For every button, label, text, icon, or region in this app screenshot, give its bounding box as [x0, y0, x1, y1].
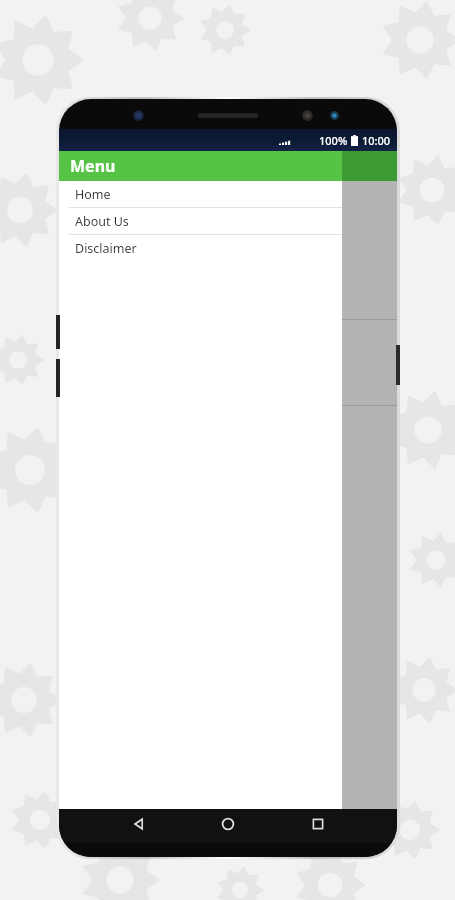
- button[interactable]: Disclaimer: [59, 235, 342, 261]
- staticText: About Us: [75, 213, 129, 230]
- button[interactable]: Back: [129, 814, 149, 834]
- button[interactable]: Home: [59, 181, 342, 207]
- staticText: Disclaimer: [75, 240, 137, 257]
- staticText: 10:00: [362, 133, 391, 148]
- staticText: Menu: [70, 155, 116, 177]
- button[interactable]: Home: [218, 814, 238, 834]
- staticText: Home: [75, 186, 111, 203]
- staticText: 100%: [319, 133, 348, 148]
- button[interactable]: Recent apps: [308, 814, 328, 834]
- button[interactable]: Make a call: [201, 206, 255, 260]
- button[interactable]: About Us: [59, 208, 342, 234]
